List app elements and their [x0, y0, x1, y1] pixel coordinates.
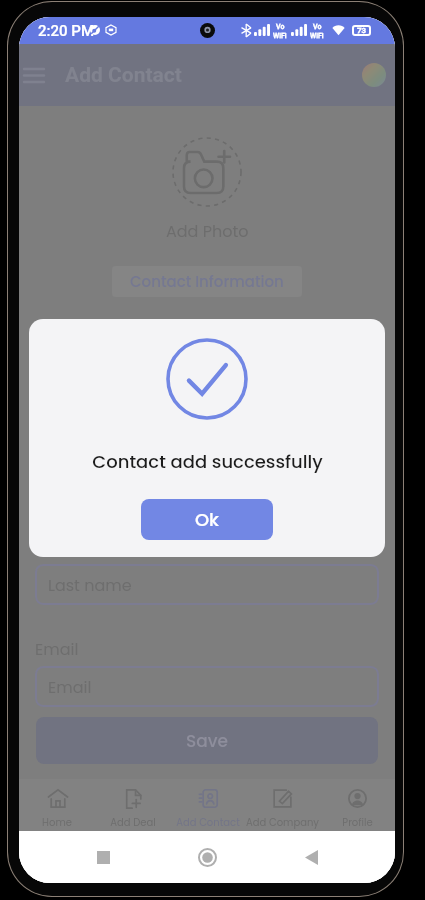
button[interactable]: Ok	[141, 499, 273, 540]
button[interactable]: Profile	[320, 779, 395, 831]
button[interactable]: Add photo	[172, 137, 242, 207]
staticText: 73	[357, 26, 367, 35]
staticText: Email	[48, 676, 92, 698]
staticText: Contact Information	[130, 271, 284, 292]
button[interactable]: Contact Information	[112, 266, 302, 297]
button[interactable]: Add Contact	[170, 779, 245, 831]
staticText: Last name	[48, 574, 132, 596]
button[interactable]: Recent apps	[83, 837, 123, 877]
button[interactable]: Last name	[35, 564, 379, 605]
button[interactable]: Email	[35, 666, 379, 707]
staticText: WiFi	[273, 32, 287, 40]
button[interactable]: Back	[291, 837, 331, 877]
staticText: Add Contact	[176, 815, 240, 829]
staticText: Contact add successfully	[92, 449, 323, 474]
button[interactable]: Profile	[362, 63, 386, 87]
staticText: Add Deal	[110, 815, 156, 829]
staticText: Profile	[342, 815, 373, 829]
staticText: Email	[35, 638, 79, 660]
staticText: Add Company	[246, 815, 319, 829]
staticText: Add Photo	[166, 220, 249, 242]
button[interactable]: Add Deal	[95, 779, 170, 831]
button[interactable]: Add Company	[245, 779, 320, 831]
staticText: Save	[186, 729, 229, 753]
staticText: Ok	[195, 507, 220, 532]
button[interactable]: First name	[35, 462, 379, 503]
staticText: Home	[42, 815, 72, 829]
staticText: 2:20 PM	[38, 22, 95, 40]
staticText: Last name	[35, 536, 119, 558]
staticText: WiFi	[310, 32, 324, 40]
staticText: Add Contact	[65, 63, 182, 88]
staticText: Vo	[313, 23, 322, 31]
button[interactable]: Open navigation menu	[22, 62, 46, 88]
button[interactable]: Home	[187, 837, 227, 877]
button[interactable]: Contact owner	[35, 360, 379, 401]
button[interactable]: Home	[19, 779, 95, 831]
staticText: Contact owner	[48, 370, 167, 392]
staticText: Vo	[276, 23, 285, 31]
